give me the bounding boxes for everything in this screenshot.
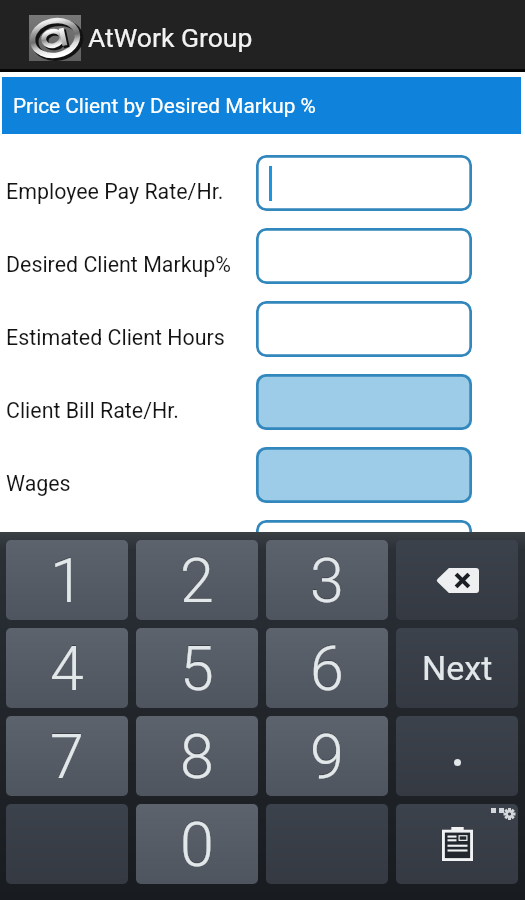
button[interactable]: 9 [266, 716, 388, 796]
button[interactable]: Delete [396, 540, 518, 620]
staticText: 7 [50, 721, 84, 792]
button[interactable]: 2 [136, 540, 258, 620]
button[interactable]: 3 [266, 540, 388, 620]
staticText: 2 [180, 545, 214, 616]
button[interactable]: Price Client by Desired Markup % [2, 77, 521, 134]
button[interactable] [256, 155, 472, 211]
button[interactable]: Next [396, 628, 518, 708]
staticText: AtWork Group [88, 22, 253, 53]
staticText: 1 [50, 544, 84, 615]
button[interactable]: 7 [6, 716, 128, 796]
staticText: 3 [310, 545, 344, 616]
staticText: Price Client by Desired Markup % [13, 94, 316, 118]
staticText: 5 [180, 632, 214, 703]
staticText: 8 [180, 720, 214, 791]
staticText: Next [422, 648, 493, 688]
button[interactable]: 5 [136, 628, 258, 708]
staticText: 2 [180, 544, 214, 615]
staticText: 6 [310, 633, 344, 704]
button[interactable] [256, 374, 472, 430]
staticText: Client Bill Rate/Hr. [6, 398, 179, 423]
button[interactable]: 6 [266, 628, 388, 708]
staticText: 9 [310, 721, 344, 792]
staticText: 3 [310, 544, 344, 615]
button[interactable]: Clipboard [396, 804, 518, 884]
staticText: 9 [310, 720, 344, 791]
button[interactable] [256, 301, 472, 357]
button[interactable]: AtWork Group home [0, 0, 270, 69]
staticText: Desired Client Markup% [6, 252, 232, 277]
staticText: Estimated Client Hours [6, 325, 225, 350]
button[interactable]: Decimal point [396, 716, 518, 796]
button[interactable]: 8 [136, 716, 258, 796]
button[interactable]: 0 [136, 804, 258, 884]
button[interactable] [256, 447, 472, 503]
staticText: 8 [180, 721, 214, 792]
staticText: 1 [50, 545, 84, 616]
button[interactable] [256, 228, 472, 284]
staticText: 4 [50, 632, 84, 703]
staticText: 4 [50, 633, 84, 704]
button[interactable]: 1 [6, 540, 128, 620]
staticText: 7 [50, 720, 84, 791]
button[interactable]: 4 [6, 628, 128, 708]
staticText: Employee Pay Rate/Hr. [6, 179, 224, 204]
staticText: 0 [180, 809, 214, 880]
staticText: 5 [180, 633, 214, 704]
staticText: Wages [6, 471, 71, 496]
staticText: 0 [180, 808, 214, 879]
button[interactable] [256, 520, 472, 576]
staticText: 6 [310, 632, 344, 703]
